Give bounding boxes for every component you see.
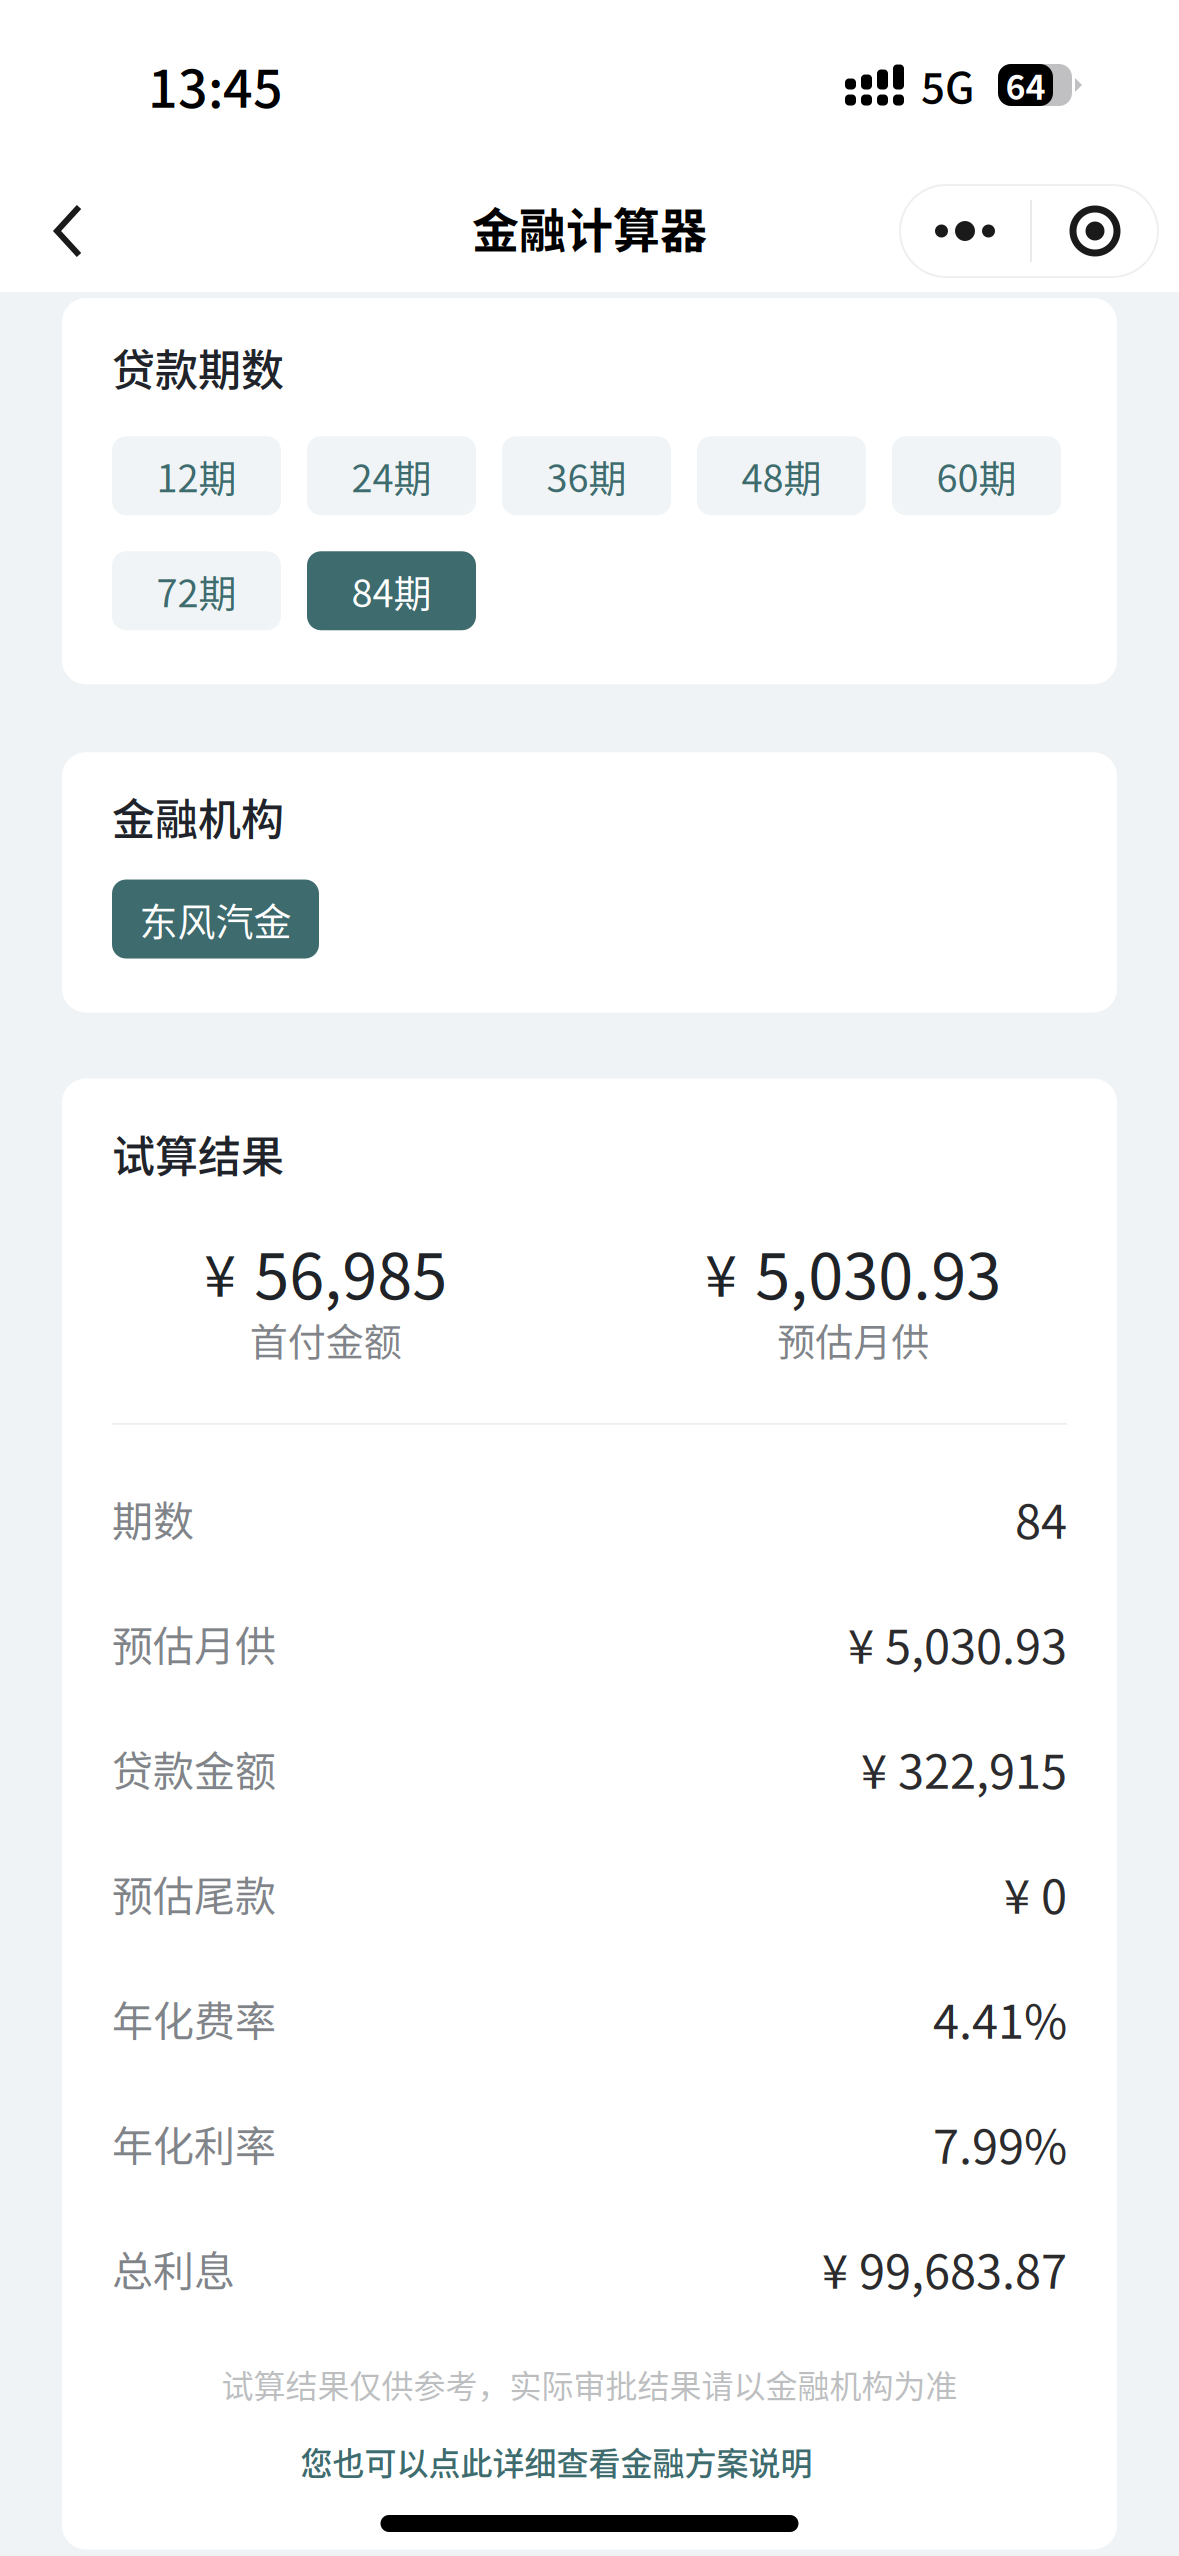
staticText: 年化费率 (112, 1989, 276, 2048)
staticText: 12期 (156, 448, 236, 503)
button[interactable]: 东风汽金 (112, 879, 319, 958)
button[interactable]: Close mini program (1032, 185, 1158, 277)
staticText: 期数 (112, 1489, 194, 1548)
staticText: 60期 (936, 448, 1016, 503)
staticText: 13:45 (148, 47, 283, 123)
staticText: 预估月供 (777, 1312, 929, 1367)
staticText: ¥ 5,030.93 (848, 1609, 1067, 1677)
staticText: 金融机构 (112, 785, 284, 848)
staticText: 5,030.93 (755, 1226, 1001, 1317)
staticText: 48期 (741, 448, 821, 503)
staticText: 7.99% (933, 2109, 1067, 2177)
staticText: 84 (1015, 1484, 1067, 1552)
button[interactable]: 36期 (502, 436, 671, 515)
staticText: 64 (1005, 60, 1045, 110)
staticText: ¥ (204, 1230, 236, 1313)
staticText: 金融计算器 (472, 193, 707, 261)
staticText: 试算结果仅供参考，实际审批结果请以金融机构为准 (221, 2361, 957, 2407)
staticText: ¥ 322,915 (861, 1734, 1067, 1802)
staticText: 东风汽金 (139, 891, 291, 946)
staticText: 年化利率 (112, 2114, 276, 2173)
staticText: ¥ (705, 1230, 737, 1313)
staticText: 贷款期数 (112, 336, 284, 398)
staticText: 36期 (546, 448, 626, 503)
staticText: ¥ 0 (1004, 1859, 1067, 1927)
staticText: ¥ 99,683.87 (822, 2234, 1067, 2302)
staticText: 您也可以点此详细查看金融方案说明 (300, 2438, 812, 2484)
button[interactable]: More (900, 185, 1030, 277)
button[interactable]: Back (40, 185, 96, 277)
button[interactable]: 48期 (697, 436, 866, 515)
staticText: 预估尾款 (112, 1864, 276, 1923)
staticText: 84期 (351, 563, 431, 618)
staticText: 72期 (156, 563, 236, 618)
staticText: 56,985 (254, 1226, 447, 1317)
staticText: 24期 (351, 448, 431, 503)
button[interactable]: 24期 (307, 436, 476, 515)
staticText: 5G (921, 55, 974, 115)
button[interactable]: 12期 (112, 436, 281, 515)
staticText: 预估月供 (112, 1614, 276, 1673)
button[interactable]: 您也可以点此详细查看金融方案说明 (112, 2407, 1067, 2484)
staticText: 4.41% (933, 1984, 1067, 2052)
button[interactable]: 60期 (892, 436, 1061, 515)
staticText: 试算结果 (112, 1122, 284, 1185)
staticText: 总利息 (112, 2239, 235, 2298)
staticText: 首付金额 (250, 1312, 402, 1367)
button[interactable]: 84期 (307, 551, 476, 630)
button[interactable]: 72期 (112, 551, 281, 630)
staticText: 贷款金额 (112, 1739, 276, 1798)
